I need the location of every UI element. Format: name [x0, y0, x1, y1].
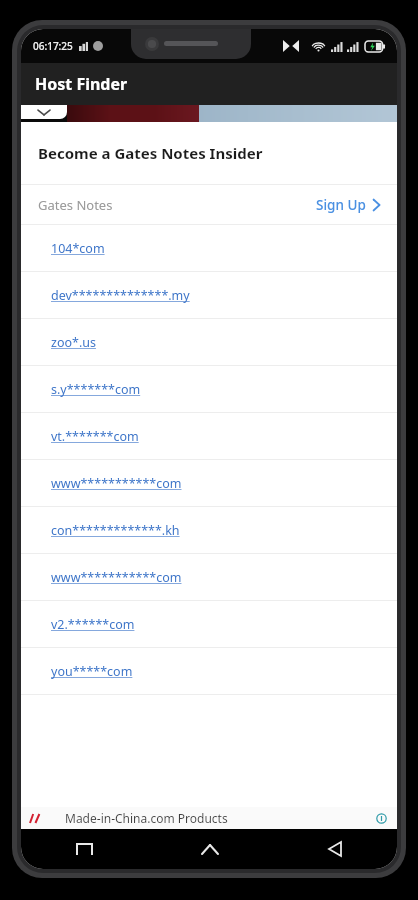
staticText: 104*com	[51, 240, 105, 257]
staticText: Sign Up	[316, 196, 366, 214]
staticText: www***********com	[51, 569, 182, 586]
staticText: v2.******com	[51, 616, 135, 633]
other: Ad info	[376, 813, 387, 824]
button[interactable]: Collapse ad	[21, 105, 67, 119]
button[interactable]: www***********com	[21, 460, 397, 506]
button[interactable]: v2.******com	[21, 601, 397, 647]
staticText: Made-in-China.com Products	[65, 810, 228, 826]
button[interactable]: vt.*******com	[21, 413, 397, 459]
button[interactable]: zoo*.us	[21, 319, 397, 365]
button[interactable]: Back	[272, 829, 397, 869]
staticText: vt.*******com	[51, 428, 139, 445]
button[interactable]: Made-in-China.com Products	[21, 807, 397, 829]
button[interactable]: www***********com	[21, 554, 397, 600]
staticText: zoo*.us	[51, 334, 96, 351]
staticText: Gates Notes	[38, 196, 113, 214]
button[interactable]: Gates Notes	[21, 185, 397, 224]
staticText: www***********com	[51, 475, 182, 492]
button[interactable]: 104*com	[21, 225, 397, 271]
button[interactable]: you*****com	[21, 648, 397, 694]
button[interactable]: con*************.kh	[21, 507, 397, 553]
button[interactable]: Become a Gates Notes Insider	[21, 122, 397, 184]
staticText: Host Finder	[35, 73, 128, 95]
staticText: you*****com	[51, 663, 133, 680]
staticText: s.y*******com	[51, 381, 141, 398]
staticText: dev**************.my	[51, 287, 190, 304]
button[interactable]: dev**************.my	[21, 272, 397, 318]
button[interactable]: Home	[147, 829, 272, 869]
staticText: 06:17:25	[33, 39, 73, 53]
button[interactable]: s.y*******com	[21, 366, 397, 412]
staticText: Become a Gates Notes Insider	[38, 143, 263, 163]
staticText: con*************.kh	[51, 522, 180, 539]
button[interactable]: Recents	[21, 829, 147, 869]
